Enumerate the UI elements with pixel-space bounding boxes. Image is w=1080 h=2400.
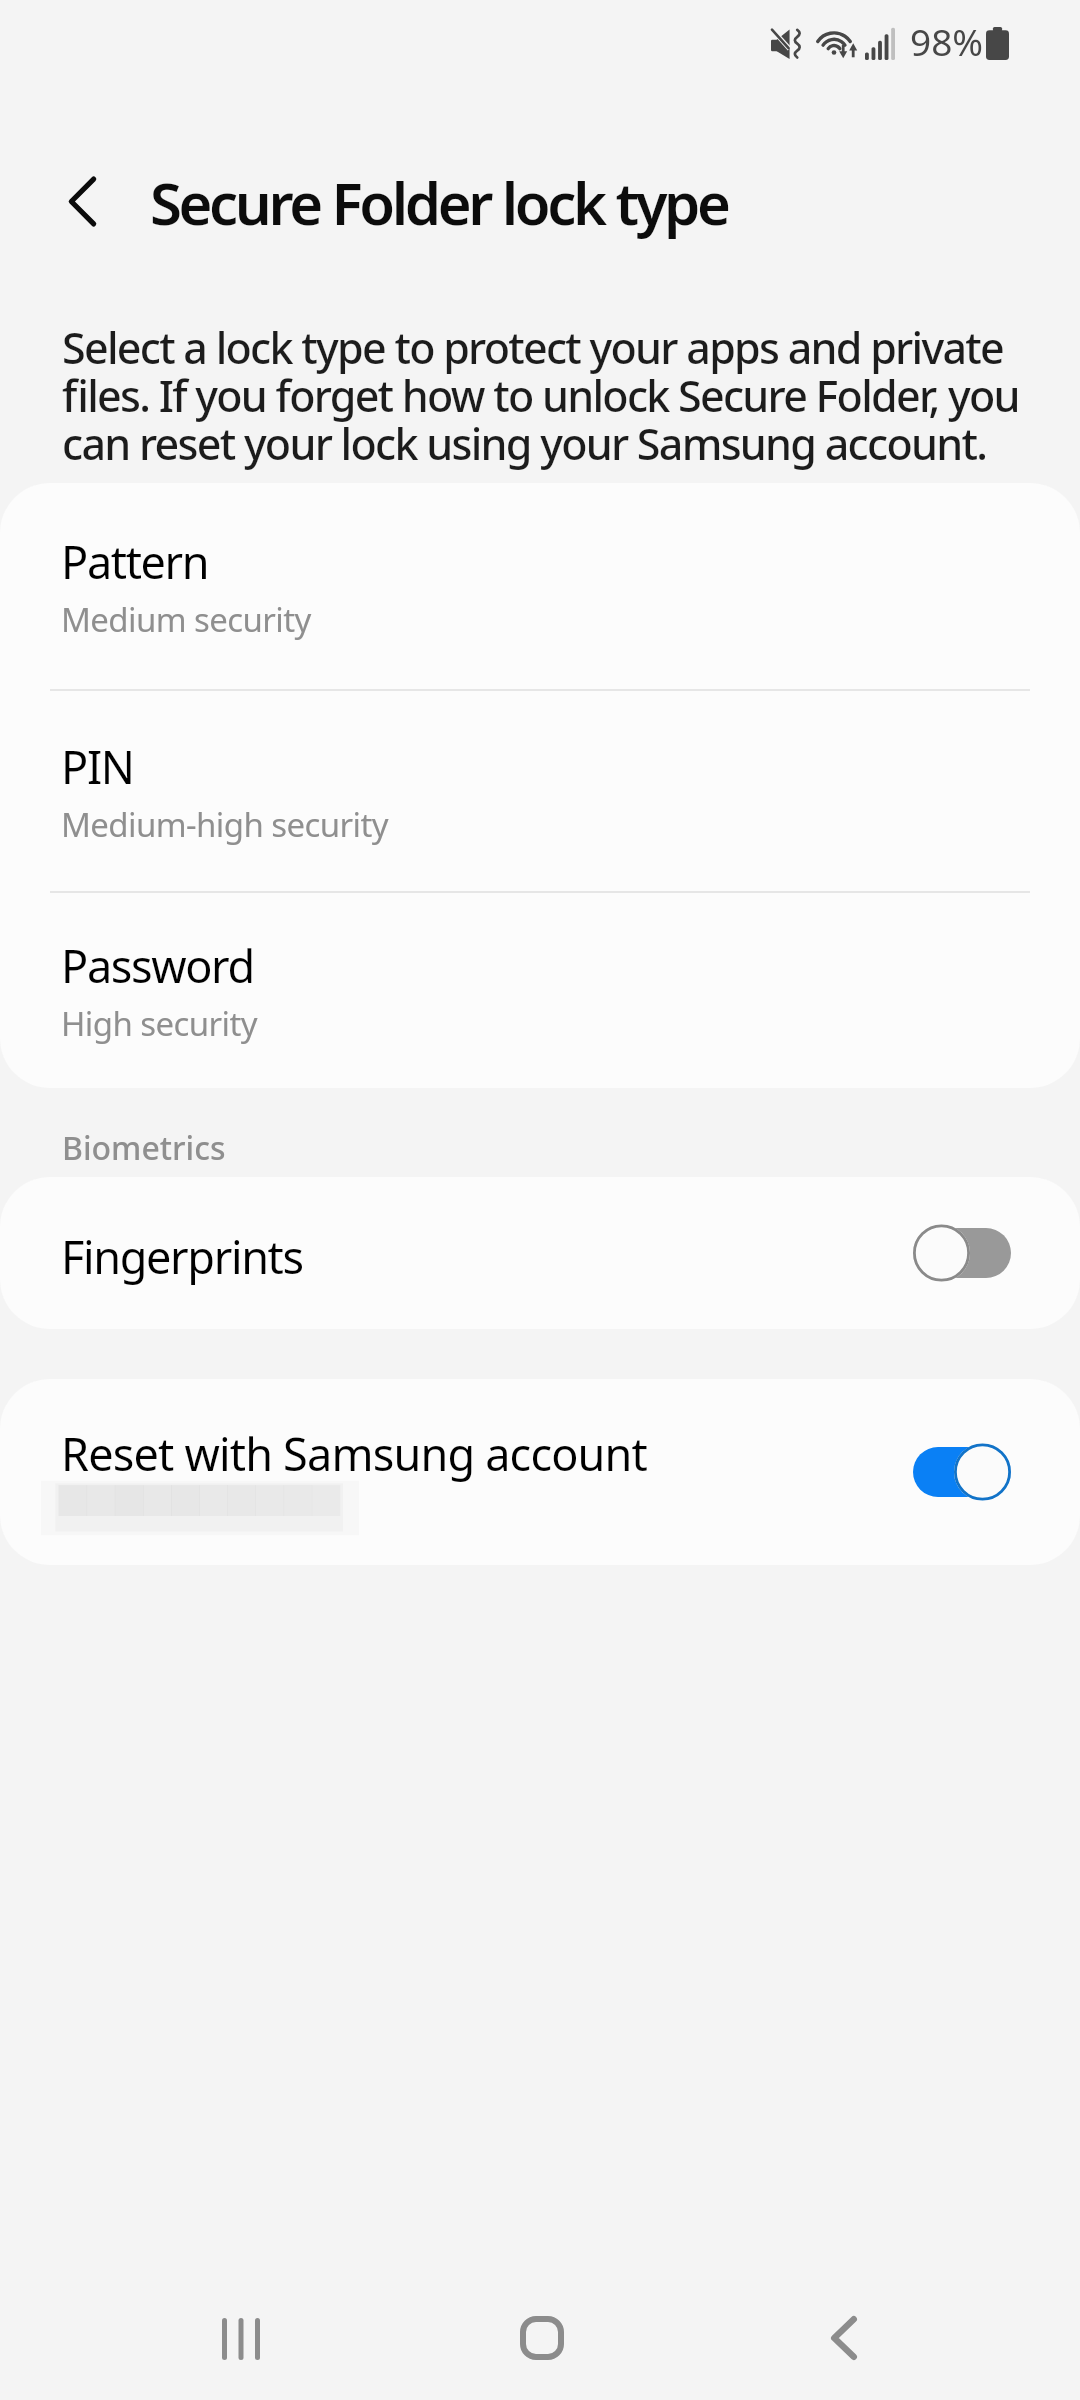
- button[interactable]: Reset with Samsung account: [0, 1379, 1080, 1565]
- staticText: 98%: [910, 16, 984, 66]
- staticText: Biometrics: [62, 1126, 226, 1170]
- button[interactable]: Recent apps: [181, 2279, 301, 2399]
- button[interactable]: Navigate up: [34, 153, 130, 249]
- staticText: Select a lock type to protect your apps …: [62, 318, 1019, 472]
- button[interactable]: Password: [0, 893, 1080, 1088]
- staticText: Secure Folder lock type: [150, 163, 728, 242]
- staticText: Reset with Samsung account: [61, 1423, 648, 1484]
- button[interactable]: Pattern: [0, 483, 1080, 689]
- staticText: Medium security: [61, 597, 311, 642]
- staticText: High security: [61, 1001, 258, 1046]
- staticText: Fingerprints: [61, 1226, 913, 1287]
- button[interactable]: Home: [482, 2278, 602, 2398]
- button[interactable]: On: [913, 1442, 1011, 1502]
- button[interactable]: Back: [784, 2278, 904, 2398]
- button[interactable]: PIN: [0, 691, 1080, 891]
- button[interactable]: Fingerprints: [0, 1177, 1080, 1329]
- staticText: PIN: [61, 736, 134, 797]
- button[interactable]: Off: [913, 1223, 1011, 1283]
- staticText: Medium-high security: [61, 802, 389, 847]
- staticText: Pattern: [61, 531, 209, 592]
- staticText: Password: [61, 935, 254, 996]
